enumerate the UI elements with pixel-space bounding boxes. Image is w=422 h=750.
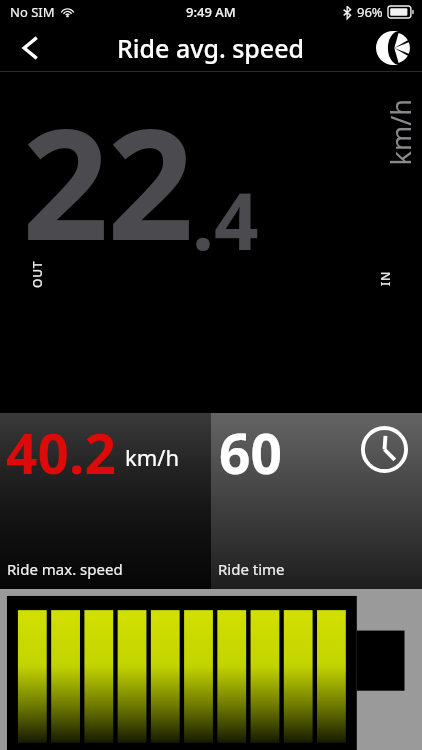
staticText: IN [377, 270, 393, 286]
staticText: 40.2 [6, 415, 116, 490]
staticText: km/h [125, 442, 180, 472]
button[interactable]: Back [0, 24, 62, 71]
staticText: Ride time [218, 559, 285, 579]
staticText: 9:49 AM [186, 3, 236, 21]
staticText: No SIM [10, 3, 55, 21]
staticText: km/h [381, 98, 418, 165]
button[interactable]: Battery level [0, 589, 422, 750]
staticText: 22 [22, 78, 192, 285]
button[interactable]: App logo [364, 24, 422, 71]
button[interactable]: 22 [0, 72, 422, 413]
staticText: .4 [192, 167, 259, 273]
staticText: Ride max. speed [7, 559, 123, 579]
staticText: Ride avg. speed [117, 31, 305, 65]
staticText: 96% [357, 3, 383, 21]
button[interactable]: 40.2 [0, 413, 211, 589]
staticText: OUT [29, 260, 45, 288]
staticText: 60 [219, 415, 282, 490]
button[interactable]: 60 [211, 413, 422, 589]
